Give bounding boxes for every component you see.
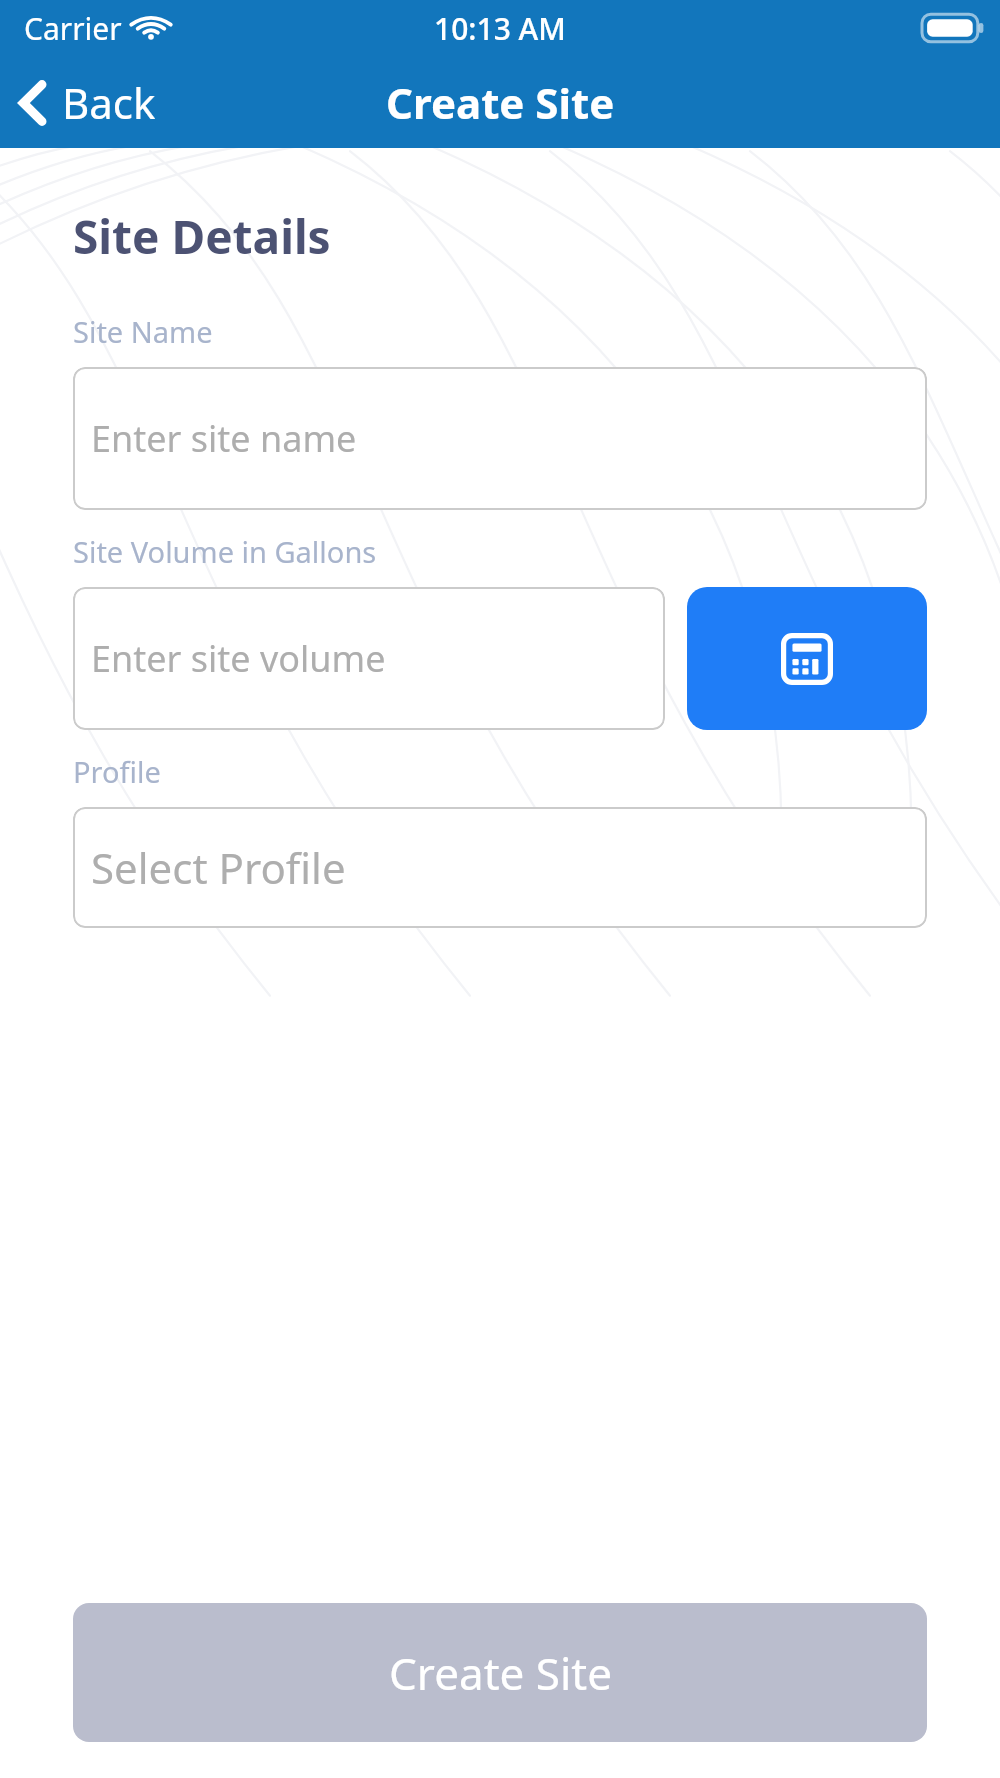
staticText: Back [62, 74, 156, 131]
staticText: Site Volume in Gallons [73, 532, 377, 571]
staticText: Create Site [386, 74, 615, 131]
button[interactable]: Select Profile [73, 807, 927, 928]
staticText: Enter site name [91, 414, 357, 463]
button[interactable]: Create Site [73, 1603, 927, 1742]
staticText: Enter site volume [91, 634, 386, 683]
button[interactable]: Back [0, 66, 176, 139]
staticText: Select Profile [91, 839, 346, 896]
staticText: Profile [73, 752, 161, 791]
staticText: Site Details [73, 205, 331, 268]
staticText: 10:13 AM [434, 8, 566, 49]
staticText: Create Site [389, 1643, 612, 1703]
staticText: Carrier [24, 8, 122, 49]
button[interactable]: Enter site name [73, 367, 927, 510]
button[interactable]: Enter site volume [73, 587, 665, 730]
button[interactable]: Calculator [687, 587, 927, 730]
button[interactable]: Select Profile [73, 807, 927, 928]
staticText: Site Name [73, 312, 213, 351]
